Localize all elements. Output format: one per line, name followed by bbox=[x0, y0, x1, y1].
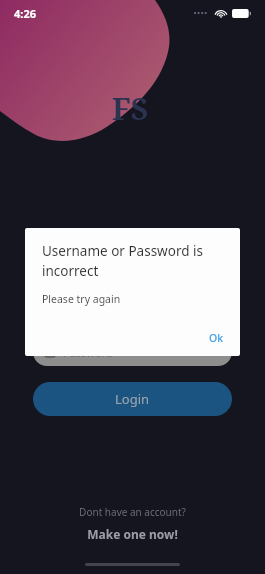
staticText: Dont have an account? bbox=[79, 505, 186, 519]
button[interactable]: Ok bbox=[201, 326, 232, 350]
staticText: FS bbox=[112, 88, 148, 129]
button[interactable]: Lock bbox=[33, 338, 232, 366]
button[interactable]: Dont have an account? bbox=[0, 505, 265, 542]
button[interactable]: Login bbox=[33, 382, 232, 416]
staticText: Password bbox=[63, 345, 113, 360]
staticText: Make one now! bbox=[87, 526, 178, 542]
other: Lock bbox=[45, 347, 55, 357]
staticText: 4:26 bbox=[14, 6, 36, 21]
staticText: Ok bbox=[209, 331, 224, 345]
staticText: Please try again bbox=[42, 292, 121, 306]
button[interactable]: Lock bbox=[33, 300, 232, 328]
staticText: Login bbox=[115, 390, 150, 408]
staticText: Username or Password is incorrect bbox=[42, 242, 223, 280]
